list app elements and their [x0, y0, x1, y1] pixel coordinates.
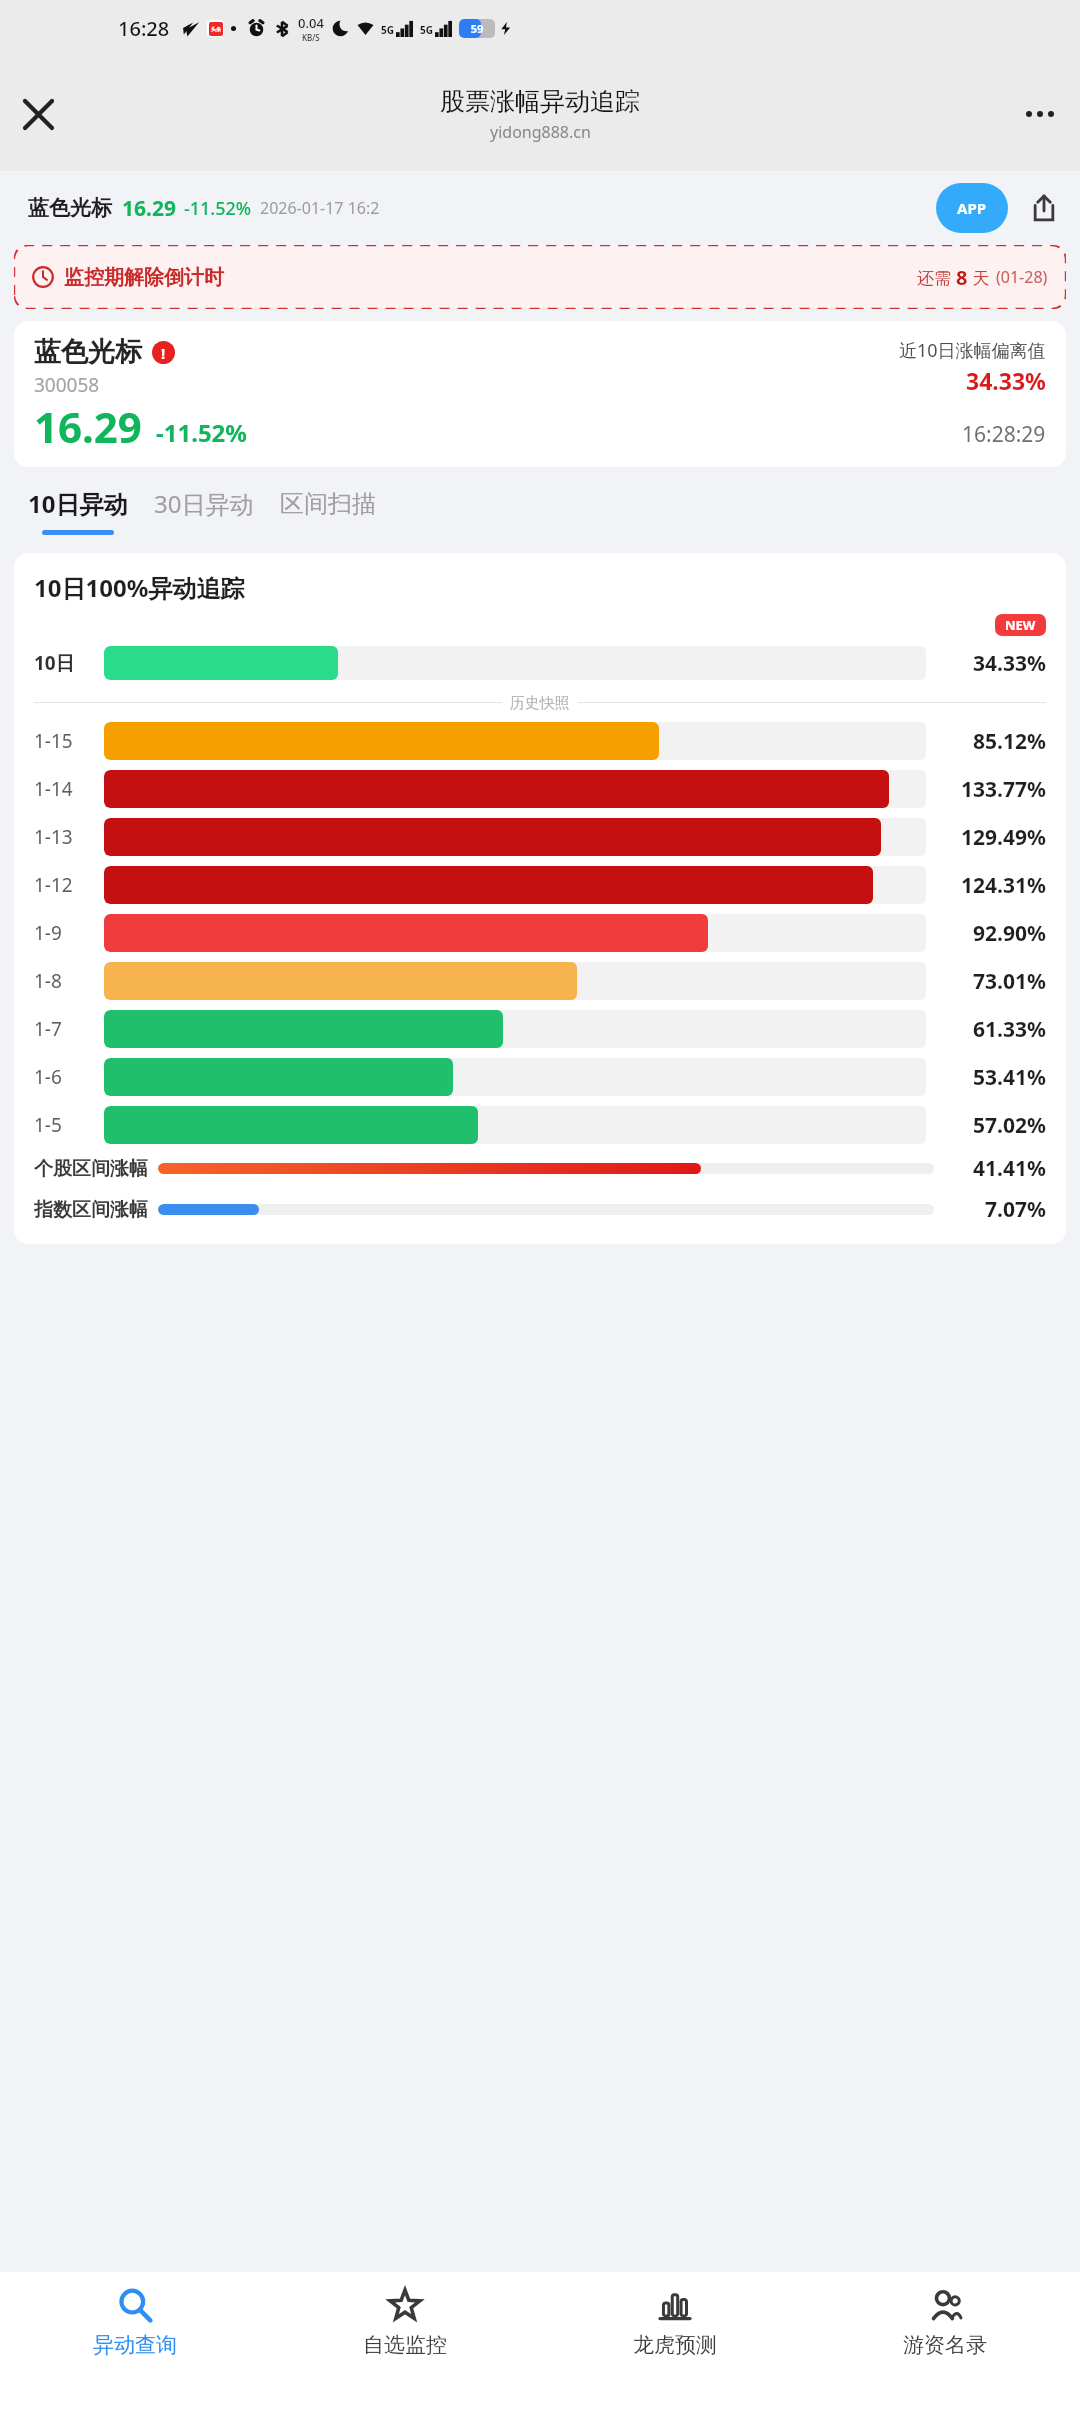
staticText: 34.33% — [973, 649, 1046, 678]
button[interactable]: More options — [1012, 86, 1068, 142]
staticText: 53.41% — [973, 1063, 1046, 1092]
staticText: APP — [957, 198, 987, 218]
staticText: -11.52% — [156, 416, 247, 449]
staticText: 129.49% — [961, 823, 1046, 852]
button[interactable]: 指数区间涨幅 — [34, 1195, 1046, 1224]
staticText: 7.07% — [985, 1195, 1046, 1224]
button[interactable]: 10日异动 — [28, 483, 128, 539]
button[interactable]: 1-14 — [34, 770, 1046, 808]
staticText: 16.29 — [122, 194, 176, 223]
staticText: KB/S — [302, 32, 320, 43]
staticText: 61.33% — [973, 1015, 1046, 1044]
staticText: 历史快照 — [502, 692, 578, 712]
staticText: 蓝色光标 — [34, 335, 142, 369]
button[interactable]: 龙虎预测 — [540, 2272, 810, 2412]
staticText: 59 — [459, 21, 495, 36]
staticText: 近10日涨幅偏离值 — [899, 338, 1046, 363]
staticText: 异动查询 — [93, 2332, 177, 2358]
staticText: 73.01% — [973, 967, 1046, 996]
button[interactable]: Close — [10, 86, 66, 142]
button[interactable]: 30日异动 — [154, 483, 254, 539]
button[interactable]: 1-6 — [34, 1058, 1046, 1096]
button[interactable]: 1-5 — [34, 1106, 1046, 1144]
staticText: 34.33% — [966, 365, 1046, 396]
staticText: 1-9 — [34, 920, 62, 946]
staticText: 龙虎预测 — [633, 2332, 717, 2358]
staticText: 5G — [381, 23, 394, 37]
button[interactable]: 1-7 — [34, 1010, 1046, 1048]
staticText: 10日100%异动追踪 — [34, 571, 245, 604]
staticText: 10日 — [34, 650, 75, 676]
staticText: 还需 — [917, 266, 956, 289]
staticText: 1-13 — [34, 824, 73, 850]
button[interactable]: 个股区间涨幅 — [34, 1154, 1046, 1183]
staticText: 133.77% — [961, 775, 1046, 804]
staticText: ! — [161, 343, 166, 363]
button[interactable]: 10日 — [34, 646, 1046, 680]
button[interactable]: APP — [936, 183, 1008, 233]
button[interactable]: 蓝色光标 — [14, 321, 1066, 467]
button[interactable]: 1-12 — [34, 866, 1046, 904]
staticText: 头条 — [211, 26, 221, 32]
button[interactable]: 游资名录 — [810, 2272, 1080, 2412]
staticText: 57.02% — [973, 1111, 1046, 1140]
staticText: 股票涨幅异动追踪 — [440, 86, 640, 117]
button[interactable]: 1-8 — [34, 962, 1046, 1000]
staticText: NEW — [1005, 616, 1036, 634]
staticText: 区间扫描 — [280, 489, 376, 519]
button[interactable]: 1-15 — [34, 722, 1046, 760]
staticText: 蓝色光标 — [28, 195, 112, 221]
button[interactable]: 监控期解除倒计时 — [14, 245, 1066, 309]
staticText: 1-14 — [34, 776, 73, 802]
staticText: 1-15 — [34, 728, 73, 754]
staticText: 16:28 — [118, 15, 170, 42]
staticText: 游资名录 — [903, 2332, 987, 2358]
staticText: 30日异动 — [154, 487, 254, 520]
staticText: 85.12% — [973, 727, 1046, 756]
staticText: 124.31% — [961, 871, 1046, 900]
staticText: 1-5 — [34, 1112, 62, 1138]
staticText: 300058 — [34, 372, 100, 398]
button[interactable]: 1-9 — [34, 914, 1046, 952]
staticText: (01-28) — [996, 266, 1048, 288]
staticText: 0.04 — [298, 14, 324, 32]
staticText: 92.90% — [973, 919, 1046, 948]
staticText: 1-12 — [34, 872, 73, 898]
button[interactable]: 自选监控 — [270, 2272, 540, 2412]
staticText: 天 — [968, 266, 990, 289]
staticText: 1-8 — [34, 968, 62, 994]
staticText: 8 — [956, 264, 968, 291]
staticText: yidong888.cn — [490, 121, 591, 143]
button[interactable]: 1-13 — [34, 818, 1046, 856]
staticText: 41.41% — [973, 1154, 1046, 1183]
staticText: 2026-01-17 16:2 — [260, 197, 380, 219]
staticText: 自选监控 — [363, 2332, 447, 2358]
staticText: 10日异动 — [28, 487, 128, 520]
staticText: 监控期解除倒计时 — [64, 265, 224, 290]
button[interactable]: 区间扫描 — [280, 485, 376, 538]
button[interactable]: 异动查询 — [0, 2272, 270, 2412]
button[interactable]: Share — [1018, 182, 1070, 234]
staticText: -11.52% — [184, 196, 252, 221]
staticText: 个股区间涨幅 — [34, 1157, 148, 1181]
staticText: 5G — [420, 23, 433, 37]
staticText: 1-6 — [34, 1064, 62, 1090]
staticText: 1-7 — [34, 1016, 62, 1042]
staticText: 16:28:29 — [962, 420, 1046, 449]
staticText: 指数区间涨幅 — [34, 1198, 148, 1222]
staticText: 16.29 — [34, 398, 142, 453]
